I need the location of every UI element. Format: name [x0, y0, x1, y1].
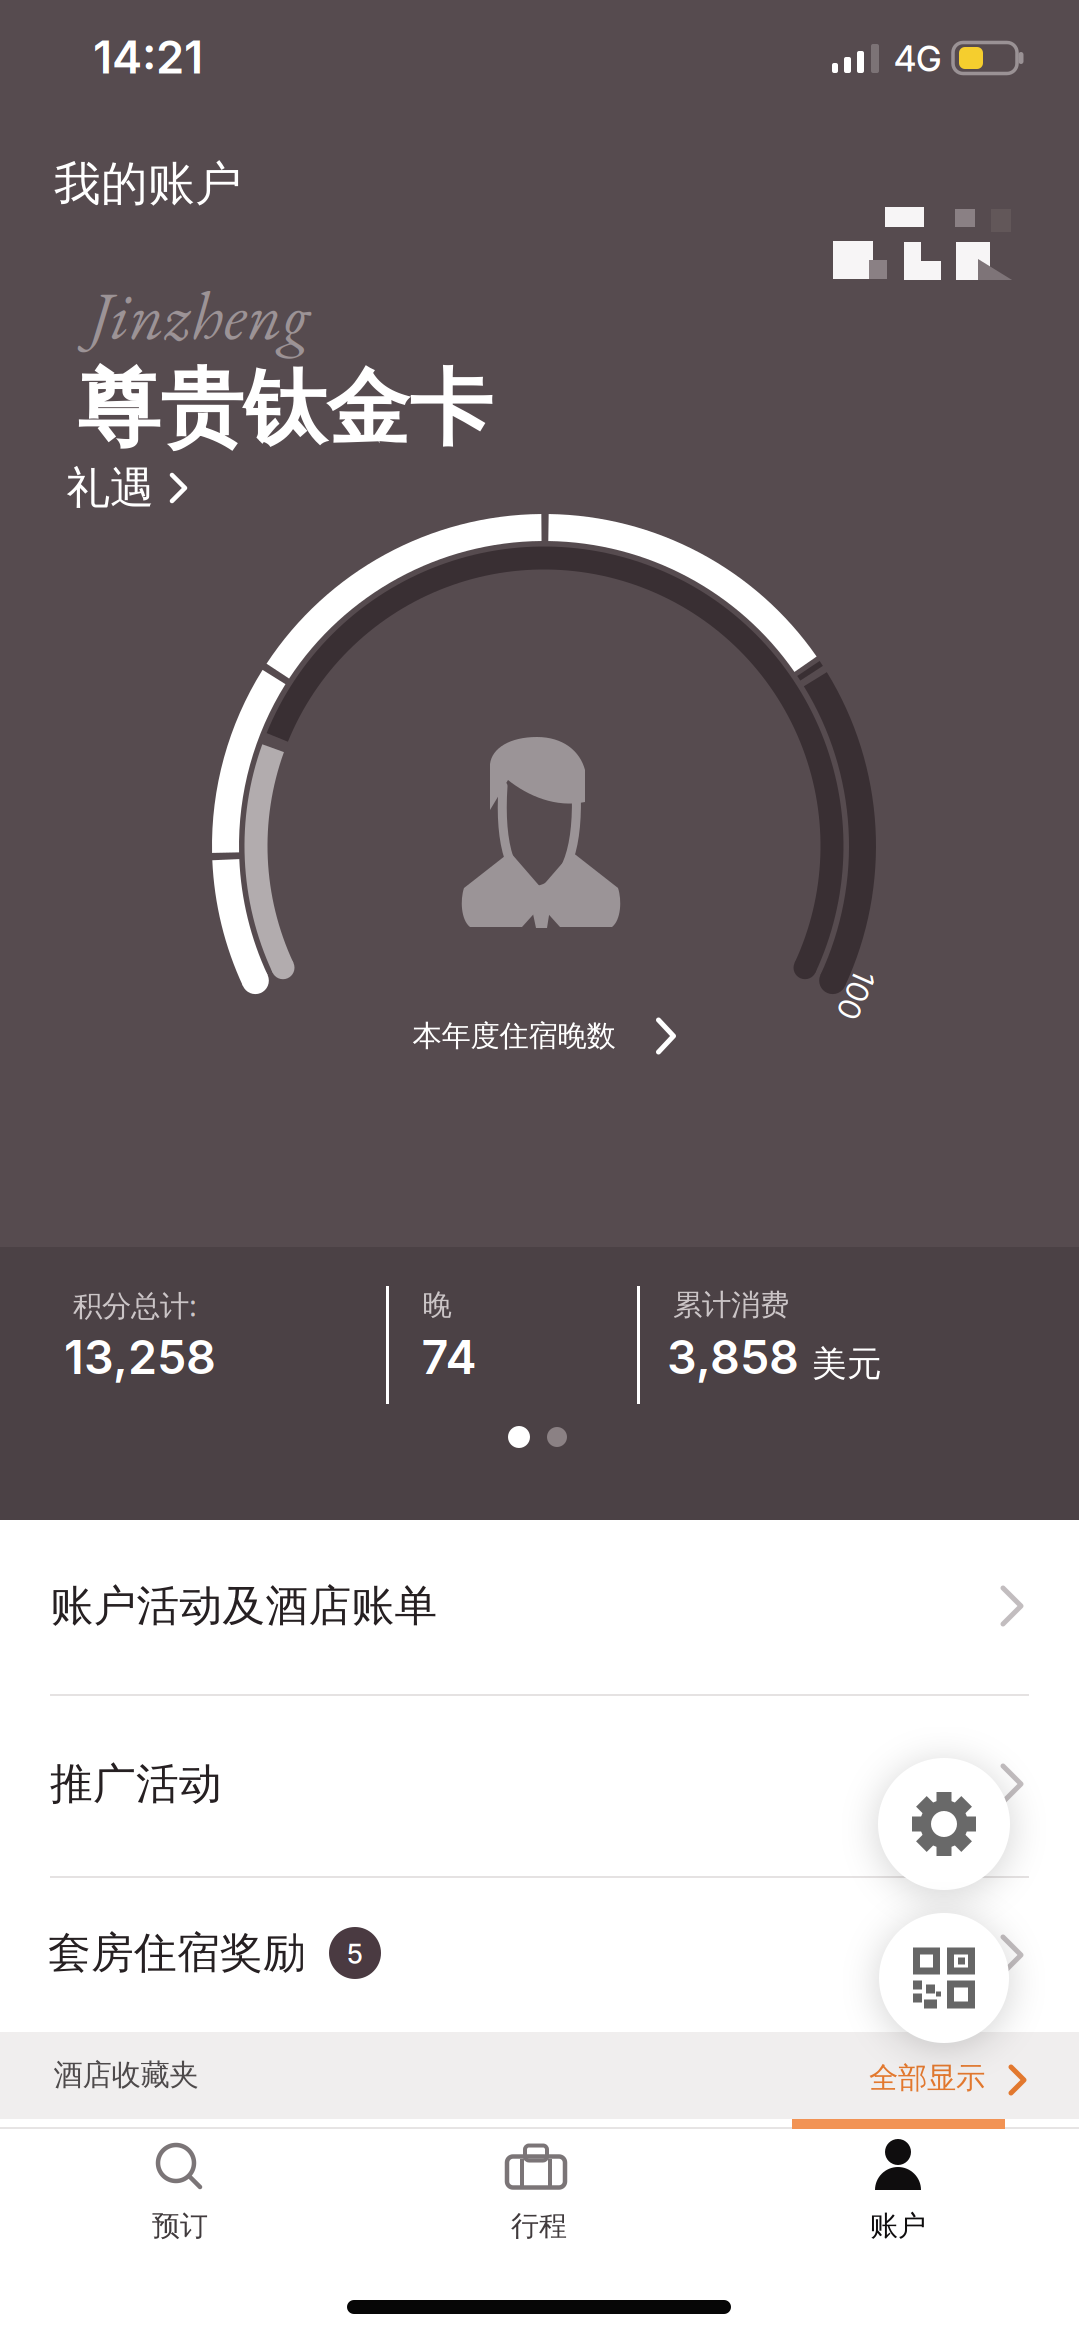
staticText: 尊贵钛金卡	[77, 358, 492, 460]
button[interactable]: 账户	[749, 2127, 1049, 2267]
staticText: 14:21	[93, 30, 203, 84]
staticText: 酒店收藏夹	[53, 2057, 198, 2093]
staticText: 100	[831, 976, 881, 1013]
staticText: 13,258	[64, 1329, 216, 1385]
button[interactable]: 酒店收藏夹	[0, 2032, 1079, 2119]
staticText: 晚	[422, 1287, 451, 1323]
button[interactable]: 推广活动	[0, 1696, 1079, 1876]
staticText: 推广活动	[50, 1758, 222, 1810]
staticText: 预订	[152, 2209, 208, 2243]
button[interactable]: 设置	[878, 1758, 1010, 1890]
staticText: 账户活动及酒店账单	[50, 1580, 437, 1632]
button[interactable]: 行程	[389, 2127, 689, 2267]
staticText: 积分总计:	[73, 1285, 197, 1324]
staticText: 行程	[511, 2209, 567, 2243]
button[interactable]: 账户活动及酒店账单	[0, 1521, 1079, 1695]
button[interactable]: 本年度住宿晚数	[412, 1018, 677, 1054]
staticText: 礼遇	[66, 461, 154, 515]
staticText: Jinzheng	[90, 271, 310, 358]
staticText: 3,858	[667, 1329, 799, 1385]
staticText: 我的账户	[54, 155, 242, 213]
staticText: 累计消费	[673, 1287, 789, 1323]
staticText: 5	[347, 1938, 363, 1970]
staticText: 美元	[812, 1343, 882, 1385]
staticText: 账户	[870, 2209, 926, 2243]
button[interactable]: 预订	[30, 2127, 330, 2267]
staticText: 74	[421, 1329, 476, 1385]
button[interactable]: 会员二维码	[879, 1913, 1009, 2043]
staticText: 本年度住宿晚数	[412, 1018, 615, 1054]
staticText: 4G	[894, 38, 942, 80]
button[interactable]: 套房住宿奖励	[0, 1878, 1079, 2034]
staticText: 套房住宿奖励	[48, 1927, 306, 1979]
staticText: 全部显示	[869, 2060, 985, 2096]
button[interactable]: 礼遇	[66, 461, 188, 515]
